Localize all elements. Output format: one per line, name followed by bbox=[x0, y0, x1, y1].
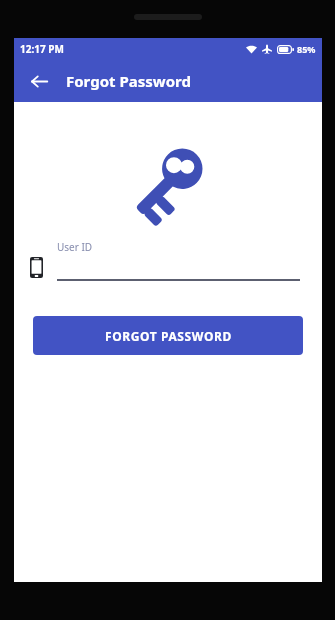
other: Phone bbox=[30, 257, 43, 278]
staticText: 85% bbox=[297, 43, 316, 55]
staticText: Forgot Password bbox=[66, 71, 191, 91]
staticText: FORGOT PASSWORD bbox=[105, 328, 232, 344]
other: Key bbox=[124, 140, 212, 226]
button[interactable]: Back bbox=[24, 66, 54, 96]
staticText: User ID bbox=[57, 240, 93, 254]
staticText: 12:17 PM bbox=[20, 42, 64, 56]
button[interactable]: FORGOT PASSWORD bbox=[33, 316, 303, 355]
